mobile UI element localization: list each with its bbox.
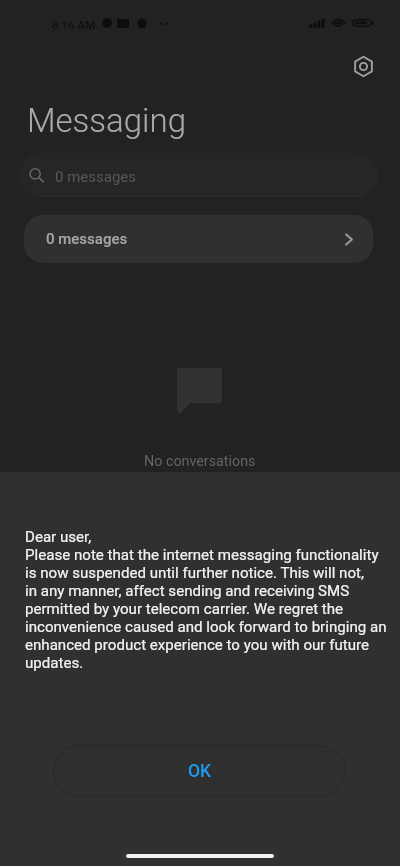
staticText: No conversations (144, 453, 256, 470)
staticText: 0 messages (46, 230, 128, 248)
staticText: Messaging (27, 101, 186, 140)
button[interactable]: OK (53, 745, 346, 797)
staticText: Dear user, Please note that the internet… (25, 528, 387, 672)
staticText: OK (188, 761, 212, 782)
button[interactable]: Settings (343, 46, 383, 86)
staticText: 8:16 AM (52, 18, 96, 31)
button[interactable]: 0 messages (20, 153, 378, 197)
button[interactable]: 0 messages (24, 215, 373, 263)
staticText: 0 messages (55, 168, 137, 186)
